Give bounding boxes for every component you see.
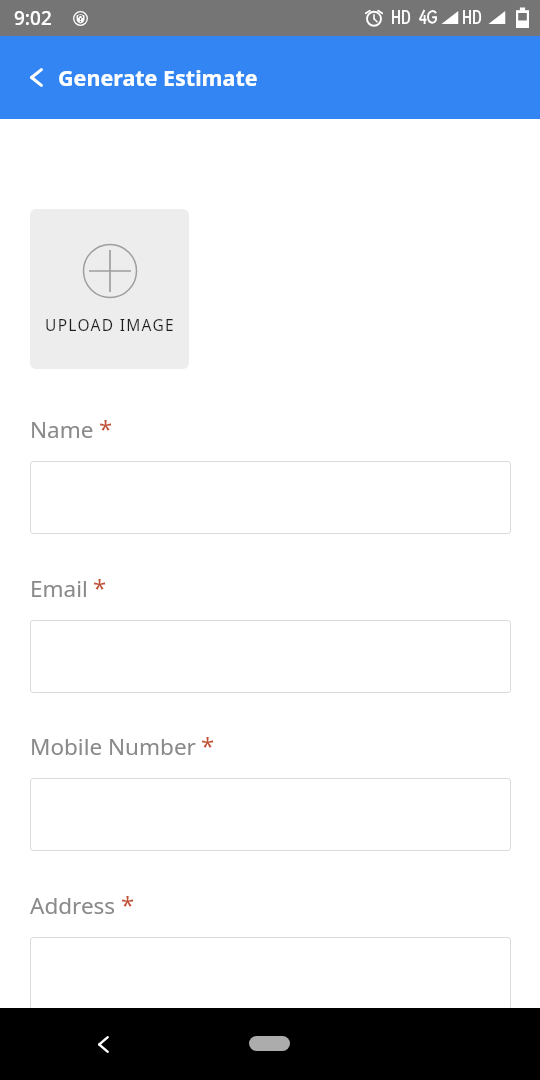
staticText: * [93, 571, 107, 604]
staticText: Generate Estimate [58, 63, 258, 92]
staticText: * [201, 729, 215, 762]
button[interactable]: Email [30, 620, 511, 693]
button[interactable]: Mobile Number [30, 778, 511, 851]
staticText: 9:02 [14, 5, 52, 31]
button[interactable]: Address [30, 937, 511, 1008]
button[interactable]: Back [0, 36, 58, 119]
staticText: Address [30, 890, 116, 921]
staticText: Email [30, 573, 88, 604]
staticText: * [99, 412, 113, 445]
staticText: * [121, 888, 135, 921]
button[interactable]: Back [80, 1021, 126, 1067]
button[interactable]: Home [249, 1036, 290, 1051]
button[interactable]: Name [30, 461, 511, 534]
button[interactable]: Upload image [30, 209, 189, 369]
staticText: UPLOAD IMAGE [45, 314, 175, 335]
staticText: Name [30, 414, 94, 445]
staticText: Mobile Number [30, 731, 196, 762]
